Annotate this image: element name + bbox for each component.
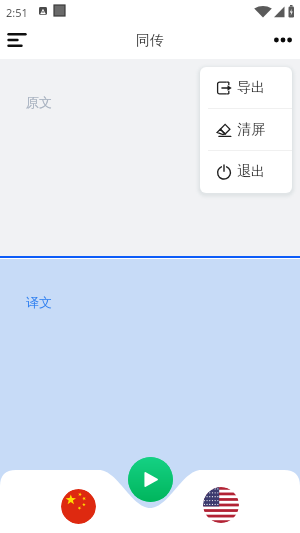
- button[interactable]: More options: [266, 23, 300, 57]
- staticText: 译文: [26, 294, 52, 310]
- button[interactable]: 导出: [200, 67, 292, 108]
- staticText: 导出: [237, 79, 265, 97]
- staticText: 原文: [26, 94, 52, 110]
- button[interactable]: Play: [128, 457, 173, 502]
- button[interactable]: 退出: [200, 151, 292, 192]
- staticText: 同传: [136, 32, 164, 50]
- staticText: 退出: [237, 163, 265, 181]
- staticText: 2:51: [6, 5, 28, 20]
- button[interactable]: English: [203, 487, 239, 523]
- button[interactable]: Menu: [0, 23, 34, 57]
- staticText: 清屏: [237, 121, 265, 139]
- button[interactable]: 清屏: [200, 109, 292, 150]
- button[interactable]: Chinese: [61, 489, 96, 524]
